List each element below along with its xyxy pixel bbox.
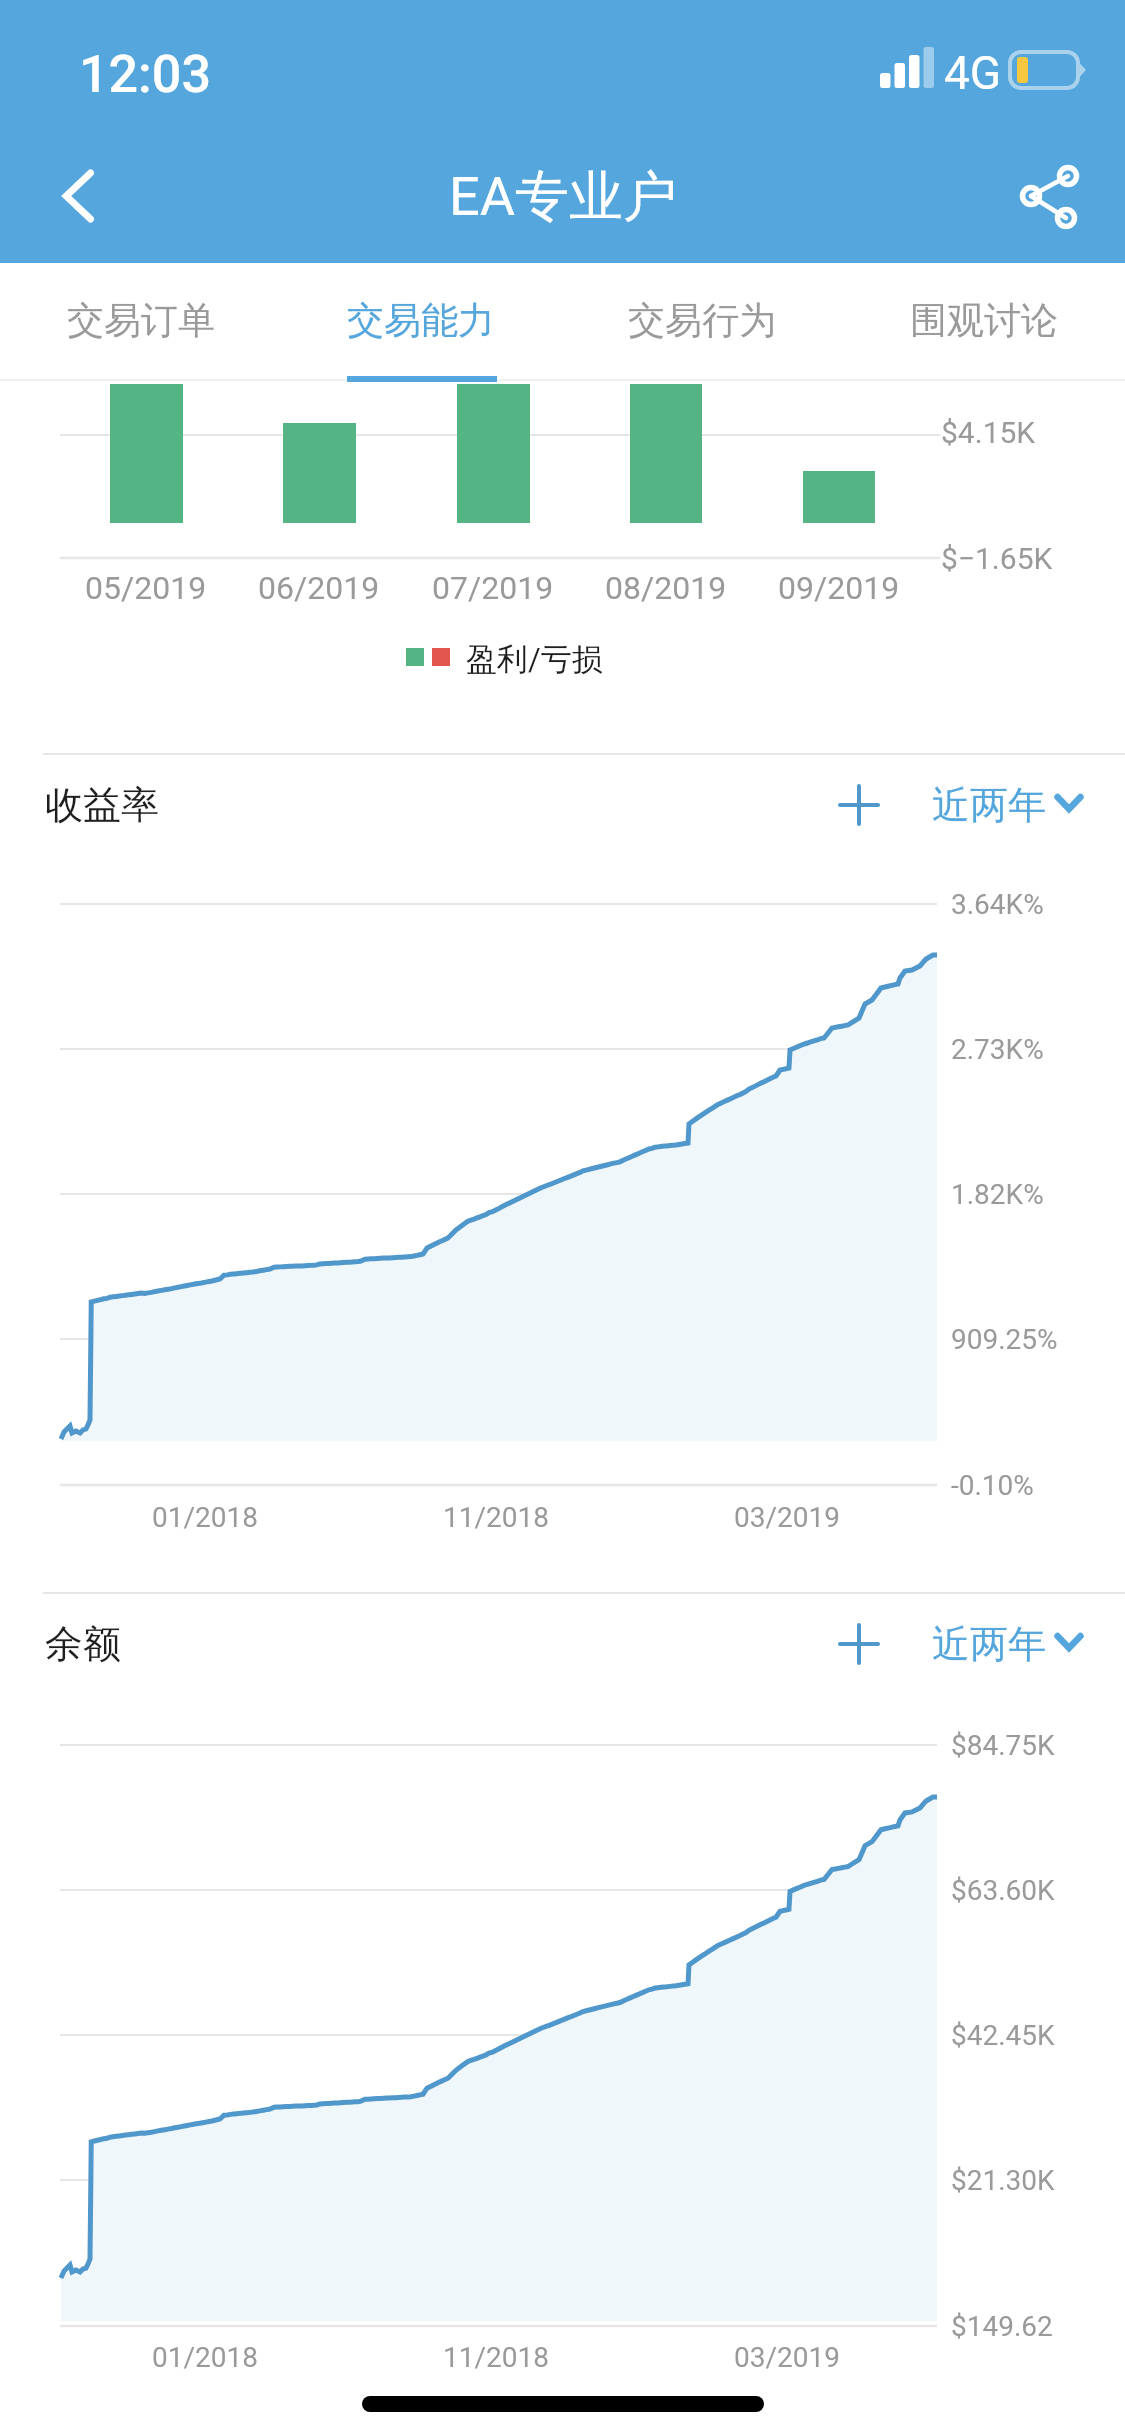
- staticText: 余额: [45, 1620, 121, 1668]
- staticText: $84.75K: [951, 1729, 1055, 1762]
- button[interactable]: Add: [812, 758, 906, 852]
- staticText: 11/2018: [443, 1501, 549, 1534]
- staticText: $42.45K: [951, 2019, 1055, 2052]
- staticText: 盈利/亏损: [466, 640, 603, 679]
- button[interactable]: 交易订单: [1, 263, 281, 378]
- staticText: 收益率: [45, 781, 159, 829]
- button[interactable]: 围观讨论: [844, 263, 1124, 378]
- staticText: 交易订单: [67, 297, 215, 344]
- staticText: $21.30K: [951, 2164, 1055, 2197]
- button[interactable]: 交易行为: [562, 263, 842, 378]
- staticText: 01/2018: [152, 2341, 258, 2374]
- staticText: 围观讨论: [910, 297, 1058, 344]
- staticText: 1.82K%: [951, 1178, 1044, 1211]
- staticText: 交易行为: [628, 297, 776, 344]
- button[interactable]: 近两年: [932, 763, 1084, 847]
- button[interactable]: 交易能力: [281, 263, 561, 378]
- staticText: 07/2019: [432, 569, 554, 607]
- staticText: 08/2019: [605, 569, 727, 607]
- staticText: 交易能力: [347, 297, 495, 344]
- staticText: 01/2018: [152, 1501, 258, 1534]
- button[interactable]: 近两年: [932, 1602, 1084, 1686]
- staticText: -0.10%: [951, 1469, 1034, 1502]
- staticText: EA专业户: [449, 163, 677, 231]
- staticText: 4G: [944, 46, 1002, 100]
- staticText: 06/2019: [258, 569, 380, 607]
- button[interactable]: Add: [812, 1597, 906, 1691]
- staticText: 03/2019: [734, 1501, 840, 1534]
- staticText: 909.25%: [951, 1323, 1058, 1356]
- staticText: $63.60K: [951, 1874, 1055, 1907]
- staticText: 03/2019: [734, 2341, 840, 2374]
- staticText: 近两年: [932, 1620, 1046, 1668]
- staticText: 2.73K%: [951, 1033, 1044, 1066]
- staticText: $−1.65K: [941, 541, 1053, 576]
- staticText: 09/2019: [778, 569, 900, 607]
- staticText: 11/2018: [443, 2341, 549, 2374]
- staticText: 05/2019: [85, 569, 207, 607]
- staticText: $4.15K: [941, 415, 1036, 450]
- staticText: $149.62: [951, 2310, 1053, 2343]
- button[interactable]: Back: [20, 137, 138, 255]
- button[interactable]: Share: [986, 137, 1104, 255]
- staticText: 近两年: [932, 781, 1046, 829]
- staticText: 12:03: [79, 44, 211, 105]
- staticText: 3.64K%: [951, 888, 1044, 921]
